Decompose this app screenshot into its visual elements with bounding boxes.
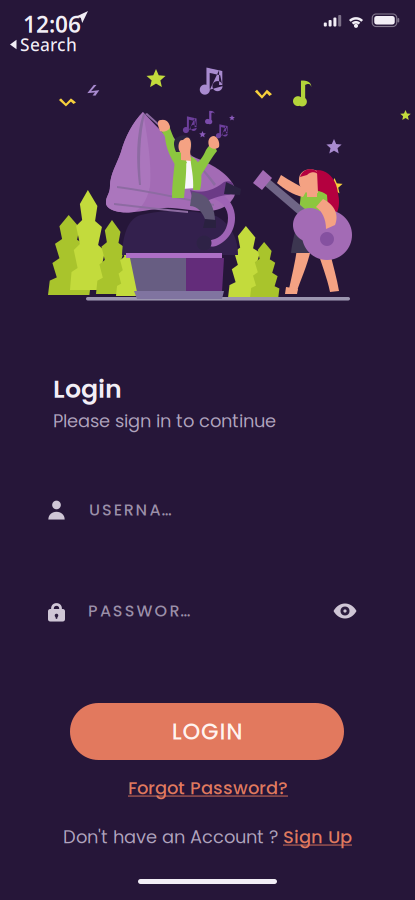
staticText: USERNAME: [89, 499, 186, 521]
staticText: Forgot Password?: [128, 775, 288, 800]
staticText: Search: [20, 33, 77, 56]
staticText: LOGIN: [172, 716, 242, 747]
staticText: Login: [53, 371, 122, 407]
button[interactable]: USERNAME: [48, 492, 348, 528]
button[interactable]: Show password: [327, 596, 363, 625]
button[interactable]: LOGIN: [70, 703, 344, 760]
staticText: Please sign in to continue: [53, 408, 276, 433]
staticText: Don't have an Account ?: [63, 824, 283, 849]
button[interactable]: Search: [6, 31, 81, 58]
staticText: PASSWORD: [88, 600, 192, 622]
button[interactable]: Sign Up: [283, 824, 352, 849]
staticText: 12:06: [23, 9, 81, 39]
staticText: Sign Up: [283, 824, 352, 849]
button[interactable]: Forgot Password?: [118, 775, 298, 801]
